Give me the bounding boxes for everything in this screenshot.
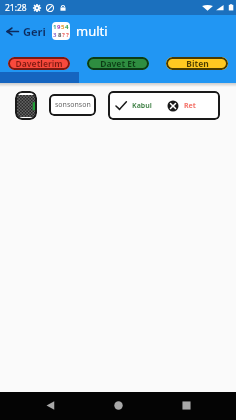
- staticText: 1: [53, 23, 57, 31]
- staticText: Geri: [23, 24, 46, 39]
- button[interactable]: Geri: [32, 392, 68, 420]
- button[interactable]: Profil: [15, 91, 37, 120]
- button[interactable]: Ana ekran: [100, 392, 136, 420]
- staticText: 5: [61, 23, 65, 31]
- staticText: Davetlerim: [15, 58, 63, 70]
- staticText: 3: [53, 31, 57, 39]
- button[interactable]: Davetlerim: [8, 57, 70, 70]
- staticText: 8: [58, 31, 62, 39]
- staticText: Kabul: [132, 101, 152, 111]
- staticText: Ret: [184, 101, 196, 111]
- other: Geri: [6, 25, 19, 38]
- button[interactable]: Ret: [159, 91, 220, 120]
- button[interactable]: Son uygulamalar: [168, 392, 204, 420]
- button[interactable]: Geri: [0, 15, 50, 47]
- button[interactable]: Davet Et: [87, 57, 149, 70]
- staticText: ?: [62, 31, 65, 39]
- staticText: 9: [57, 23, 61, 31]
- button[interactable]: Kabul: [108, 91, 159, 120]
- staticText: ?: [66, 31, 69, 39]
- staticText: multi: [76, 22, 108, 40]
- staticText: Davet Et: [100, 58, 136, 70]
- staticText: sonsonson: [55, 100, 91, 110]
- button[interactable]: Biten: [166, 57, 228, 70]
- staticText: Biten: [186, 58, 209, 70]
- staticText: 4: [65, 23, 69, 31]
- button[interactable]: sonsonson: [49, 94, 96, 116]
- staticText: 21:28: [5, 2, 27, 14]
- button[interactable]: multi: [52, 22, 70, 40]
